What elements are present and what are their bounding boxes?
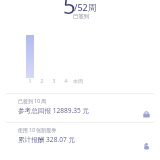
staticText: 4 [60,78,72,85]
staticText: 参考总回报 12889.35 元 [18,106,90,115]
other: Reward bag [142,110,151,119]
staticText: 1 [24,78,36,85]
staticText: 累计报酬 328.07 元 [18,135,76,144]
staticText: 已签到 [73,13,90,20]
button[interactable]: 使用 10 张割股券 [0,123,160,151]
staticText: 5 [63,0,76,20]
button[interactable]: 已签到 10 周 [0,94,160,122]
staticText: /52周 [74,1,97,13]
other: Coupon [142,142,151,151]
staticText: 3 [48,78,60,85]
staticText: 2 [36,78,48,85]
staticText: 本周 [72,78,84,84]
staticText: 使用 10 张割股券 [18,127,57,134]
staticText: 已签到 10 周 [18,98,47,105]
